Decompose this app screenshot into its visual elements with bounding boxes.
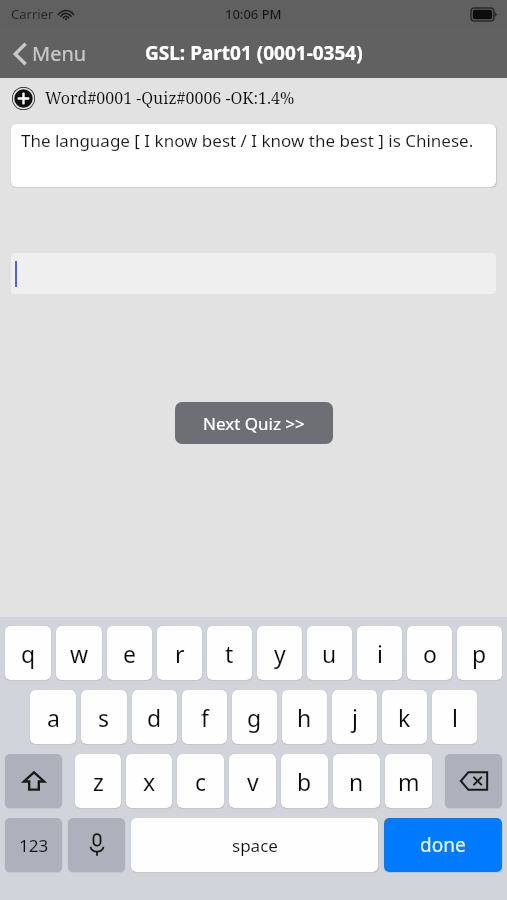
staticText: g xyxy=(247,702,262,733)
staticText: v xyxy=(247,766,259,797)
staticText: GSL: Part01 (0001-0354) xyxy=(145,40,363,66)
staticText: f xyxy=(201,702,209,733)
button[interactable]: v xyxy=(229,754,276,808)
staticText: Carrier xyxy=(11,5,54,23)
button[interactable]: Menu xyxy=(9,36,91,71)
button[interactable]: b xyxy=(281,754,328,808)
button[interactable]: p xyxy=(457,626,502,680)
staticText: h xyxy=(297,702,312,733)
button[interactable] xyxy=(11,253,496,294)
button[interactable]: o xyxy=(407,626,452,680)
staticText: The language [ I know best / I know the … xyxy=(21,129,474,152)
staticText: done xyxy=(420,832,466,858)
button[interactable]: x xyxy=(126,754,172,808)
staticText: m xyxy=(398,766,420,797)
staticText: a xyxy=(47,702,60,733)
button[interactable]: w xyxy=(56,626,102,680)
staticText: p xyxy=(472,638,487,669)
staticText: w xyxy=(70,638,89,669)
button[interactable]: i xyxy=(357,626,402,680)
button[interactable]: 123 xyxy=(5,818,62,872)
button[interactable]: c xyxy=(177,754,224,808)
staticText: q xyxy=(21,638,36,669)
button[interactable]: f xyxy=(182,690,227,744)
button[interactable]: e xyxy=(107,626,152,680)
button[interactable]: n xyxy=(333,754,380,808)
button[interactable]: Next Quiz >> xyxy=(175,402,333,444)
staticText: r xyxy=(175,638,185,669)
button[interactable]: a xyxy=(30,690,76,744)
button[interactable]: r xyxy=(157,626,202,680)
staticText: o xyxy=(423,638,437,669)
button[interactable]: s xyxy=(81,690,127,744)
staticText: space xyxy=(232,834,278,857)
button[interactable]: Backspace xyxy=(445,754,502,808)
staticText: y xyxy=(274,638,286,669)
staticText: u xyxy=(322,638,337,669)
button[interactable]: y xyxy=(257,626,302,680)
button[interactable]: done xyxy=(384,818,502,872)
staticText: Word#0001 -Quiz#0006 -OK:1.4% xyxy=(45,87,295,109)
staticText: Menu xyxy=(32,40,87,67)
button[interactable]: z xyxy=(75,754,121,808)
button[interactable]: k xyxy=(382,690,427,744)
button[interactable]: The language [ I know best / I know the … xyxy=(11,124,496,187)
button[interactable]: q xyxy=(5,626,51,680)
staticText: Next Quiz >> xyxy=(203,412,305,435)
staticText: l xyxy=(452,702,458,733)
button[interactable]: m xyxy=(385,754,432,808)
staticText: s xyxy=(98,702,110,733)
button[interactable]: t xyxy=(207,626,252,680)
staticText: d xyxy=(147,702,162,733)
button[interactable]: Voice input xyxy=(68,818,125,872)
staticText: z xyxy=(93,766,104,797)
button[interactable]: Add xyxy=(12,87,35,110)
button[interactable]: j xyxy=(332,690,377,744)
staticText: e xyxy=(123,638,136,669)
staticText: b xyxy=(297,766,312,797)
button[interactable]: space xyxy=(131,818,378,872)
staticText: k xyxy=(398,702,411,733)
staticText: 10:06 PM xyxy=(225,5,282,23)
staticText: c xyxy=(195,766,207,797)
staticText: n xyxy=(349,766,364,797)
button[interactable]: g xyxy=(232,690,277,744)
button[interactable]: h xyxy=(282,690,327,744)
staticText: i xyxy=(377,638,383,669)
staticText: x xyxy=(143,766,156,797)
staticText: 123 xyxy=(19,834,49,857)
button[interactable]: u xyxy=(307,626,352,680)
button[interactable]: l xyxy=(432,690,477,744)
button[interactable]: d xyxy=(132,690,177,744)
staticText: j xyxy=(352,702,358,733)
staticText: t xyxy=(225,638,234,669)
button[interactable]: Shift xyxy=(5,754,62,808)
